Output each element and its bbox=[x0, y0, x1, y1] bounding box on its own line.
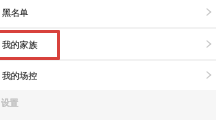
button[interactable]: 黑名单 bbox=[0, 0, 216, 28]
staticText: 设置 bbox=[1, 98, 19, 109]
button[interactable]: 我的场控 bbox=[0, 59, 216, 91]
staticText: 我的家族 bbox=[2, 40, 38, 51]
button[interactable]: 我的家族 bbox=[0, 28, 216, 60]
staticText: 黑名单 bbox=[2, 8, 29, 19]
staticText: 我的场控 bbox=[2, 71, 38, 82]
